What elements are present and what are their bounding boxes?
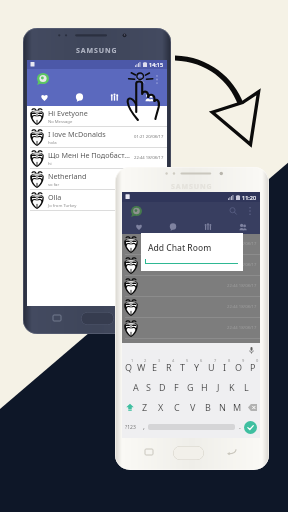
staticText: L — [244, 381, 249, 393]
staticText: 2 — [144, 358, 147, 363]
staticText: N — [219, 401, 226, 413]
button[interactable]: Recents — [53, 315, 61, 321]
button[interactable]: H — [197, 377, 211, 397]
button[interactable]: App logo — [37, 73, 49, 85]
button[interactable]: G — [183, 377, 197, 397]
staticText: J — [217, 381, 220, 393]
button[interactable]: A — [129, 377, 142, 397]
button[interactable]: Shift — [122, 397, 137, 417]
staticText: E — [152, 361, 158, 373]
staticText: 5 — [186, 358, 189, 363]
button[interactable]: 22:44 18/08/17 — [122, 297, 260, 318]
staticText: V — [190, 401, 196, 413]
button[interactable]: Search — [134, 73, 147, 86]
button[interactable]: R — [162, 357, 176, 377]
button[interactable]: Enter — [244, 421, 257, 434]
button[interactable]: Back — [227, 449, 236, 455]
staticText: 22:44 18/08/17 — [227, 325, 257, 331]
staticText: Z — [142, 401, 148, 413]
staticText: C — [174, 401, 180, 413]
button[interactable]: Recents — [145, 449, 153, 455]
staticText: U — [208, 361, 215, 373]
button[interactable]: Y — [190, 357, 204, 377]
button[interactable]: , — [139, 417, 148, 437]
button[interactable]: O — [232, 357, 246, 377]
staticText: 01:21 20/08/17 — [134, 134, 164, 140]
button[interactable]: U — [204, 357, 218, 377]
button[interactable]: Backspace — [245, 397, 260, 417]
button[interactable]: I love McDonalds — [27, 127, 167, 148]
staticText: 6 — [200, 358, 203, 363]
staticText: T — [180, 361, 186, 373]
button[interactable]: C — [169, 397, 185, 417]
staticText: 1 — [131, 358, 134, 363]
button[interactable]: . — [235, 417, 244, 437]
button[interactable]: Favourites — [27, 89, 62, 106]
staticText: 8 — [228, 358, 231, 363]
staticText: 0 — [256, 358, 259, 363]
button[interactable]: Voice input — [246, 345, 256, 355]
button[interactable]: More options — [151, 73, 163, 85]
staticText: Jo from Turkey — [48, 203, 77, 209]
button[interactable]: F — [169, 377, 183, 397]
staticText: 22:44 18/08/17 — [227, 241, 257, 247]
staticText: F — [174, 381, 179, 393]
staticText: Q — [125, 361, 133, 373]
button[interactable]: Profile — [132, 89, 167, 106]
button[interactable]: 22:44 18/08/17 — [122, 234, 260, 255]
staticText: 22:44 18/08/17 — [134, 155, 164, 161]
button[interactable]: I — [218, 357, 232, 377]
staticText: B — [205, 401, 211, 413]
button[interactable]: T — [176, 357, 190, 377]
staticText: , — [143, 422, 145, 432]
button[interactable]: 22:44 18/08/17 — [122, 276, 260, 297]
button[interactable]: Olla — [27, 190, 167, 211]
button[interactable]: E — [148, 357, 162, 377]
button[interactable]: ?123 — [122, 417, 139, 437]
button[interactable]: Groups — [190, 220, 225, 234]
button[interactable]: X — [153, 397, 169, 417]
button[interactable]: App logo — [131, 206, 142, 217]
other: Tap here — [127, 72, 160, 122]
staticText: Hi Evetyone — [48, 108, 88, 118]
button[interactable]: More options — [244, 205, 256, 217]
button[interactable]: Profile — [225, 220, 260, 234]
button[interactable]: Chats — [62, 89, 97, 106]
button[interactable]: Netherland — [27, 169, 167, 190]
button[interactable]: Home — [173, 446, 204, 460]
button[interactable]: Home — [81, 312, 114, 325]
button[interactable]: Chats — [156, 220, 190, 234]
button[interactable]: M — [230, 397, 245, 417]
staticText: M — [233, 401, 242, 413]
button[interactable]: Q — [122, 357, 135, 377]
staticText: X — [158, 401, 164, 413]
staticText: K — [229, 381, 235, 393]
button[interactable]: Groups — [97, 89, 132, 106]
staticText: 14:15 — [149, 61, 164, 68]
button[interactable]: S — [142, 377, 155, 397]
staticText: H — [201, 381, 208, 393]
button[interactable]: 22:44 18/08/17 — [122, 318, 260, 339]
staticText: Olla — [48, 192, 62, 202]
button[interactable]: Z — [137, 397, 153, 417]
button[interactable]: D — [155, 377, 169, 397]
button[interactable]: L — [239, 377, 253, 397]
button[interactable]: Favourites — [122, 220, 156, 234]
button[interactable]: Що Мені Не Подобаст… — [27, 148, 167, 169]
button[interactable]: 22:44 18/08/17 — [122, 255, 260, 276]
staticText: I — [223, 361, 227, 373]
button[interactable]: W — [135, 357, 148, 377]
staticText: D — [159, 381, 166, 393]
staticText: Що Мені Не Подобаст… — [48, 150, 130, 160]
button[interactable]: P — [246, 357, 260, 377]
staticText: O — [235, 361, 243, 373]
button[interactable]: J — [211, 377, 225, 397]
button[interactable]: N — [215, 397, 230, 417]
staticText: G — [187, 381, 194, 393]
button[interactable]: Hi Evetyone — [27, 106, 167, 127]
button[interactable]: V — [185, 397, 200, 417]
button[interactable]: K — [225, 377, 239, 397]
button[interactable]: B — [200, 397, 215, 417]
button[interactable]: Search — [227, 205, 239, 217]
